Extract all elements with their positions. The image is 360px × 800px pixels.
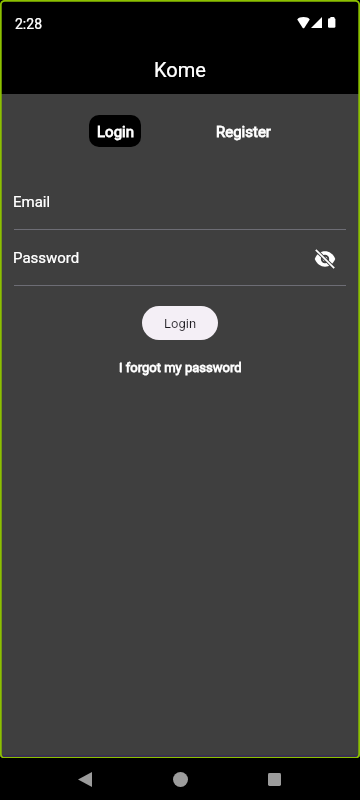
other: Battery bbox=[328, 17, 336, 28]
button[interactable]: I forgot my password bbox=[113, 357, 248, 378]
staticText: I forgot my password bbox=[119, 360, 242, 375]
staticText: Email bbox=[13, 193, 51, 211]
staticText: 2:28 bbox=[15, 16, 42, 32]
button[interactable]: Login bbox=[142, 306, 218, 340]
staticText: Login bbox=[97, 123, 134, 141]
staticText: Login bbox=[164, 316, 197, 331]
button[interactable]: Register bbox=[208, 115, 279, 147]
button[interactable]: Email bbox=[14, 188, 346, 230]
other: Wi-Fi bbox=[297, 17, 310, 28]
button[interactable]: Home bbox=[159, 758, 201, 800]
staticText: Register bbox=[216, 123, 271, 141]
button[interactable]: Toggle password visibility bbox=[311, 245, 339, 273]
button[interactable]: Recent apps bbox=[253, 758, 295, 800]
other: Mobile signal bbox=[311, 17, 322, 28]
button[interactable]: Back bbox=[64, 758, 106, 800]
staticText: Kome bbox=[154, 58, 206, 81]
staticText: Password bbox=[13, 249, 80, 267]
button[interactable]: Login bbox=[89, 115, 141, 147]
